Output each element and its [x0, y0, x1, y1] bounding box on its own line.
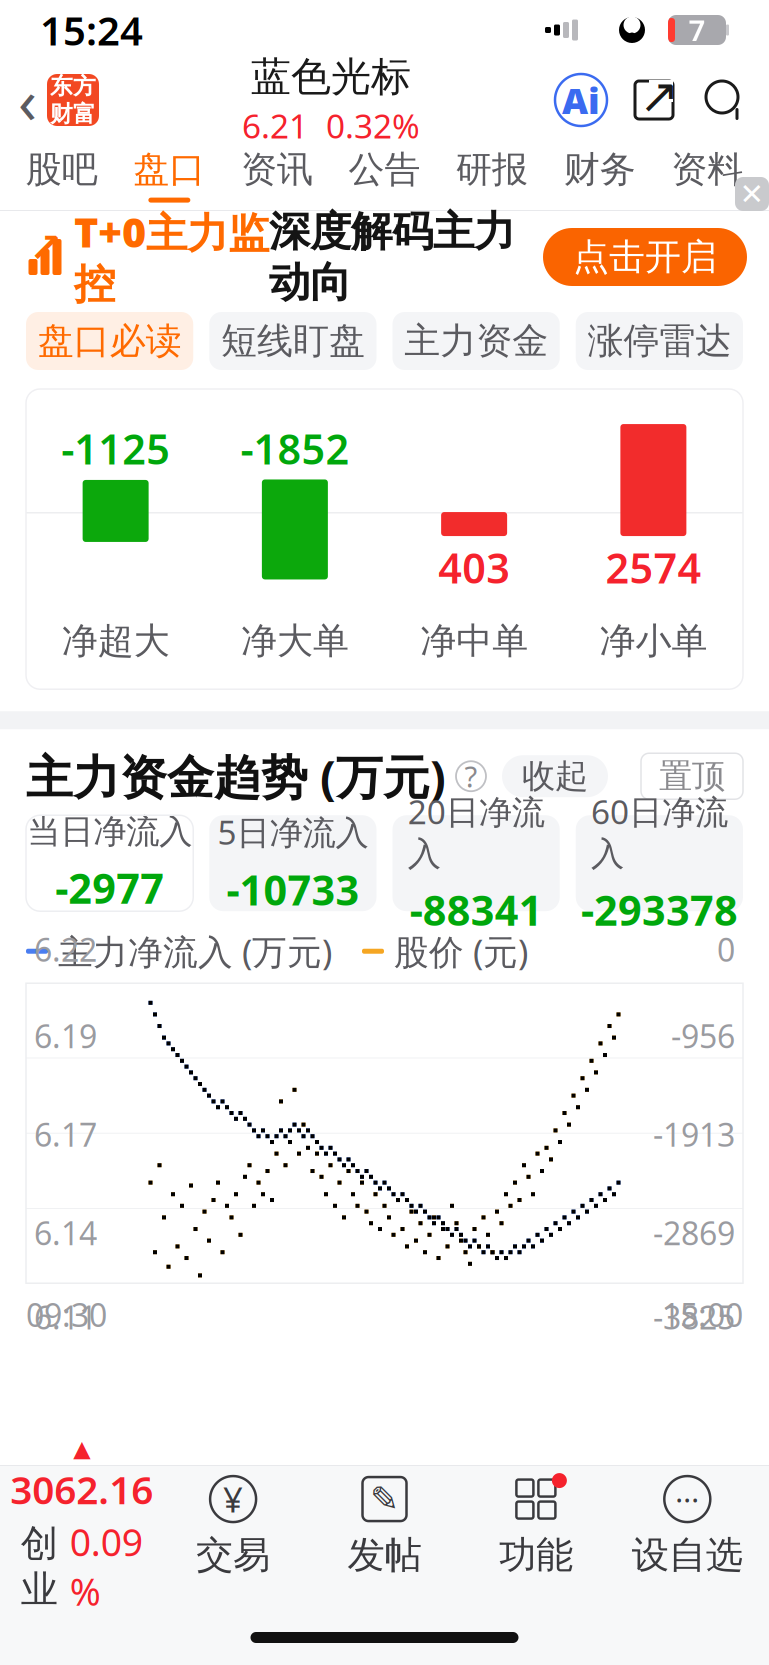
staticText: ✕ [739, 177, 764, 211]
staticText: 研报 [456, 147, 528, 192]
staticText: -3825 [653, 1296, 735, 1338]
staticText: 当日净流入 [27, 811, 192, 852]
staticText: -293378 [581, 882, 738, 937]
staticText: 6.17 [34, 1113, 97, 1155]
button[interactable]: 点击开启 [543, 228, 747, 286]
staticText: 6.21 0.32% [242, 103, 420, 148]
staticText: ↗ [29, 225, 63, 271]
button[interactable]: 股吧 [8, 140, 116, 210]
button[interactable]: 涨停雷达 [576, 312, 743, 370]
staticText: -2869 [653, 1211, 735, 1254]
button[interactable]: 主力资金 [392, 312, 560, 370]
staticText: 0.09% [70, 1517, 143, 1616]
staticText: 置顶 [659, 756, 725, 797]
staticText: 功能 [499, 1532, 573, 1578]
staticText: -2977 [55, 860, 164, 915]
button[interactable]: 资料 [653, 140, 761, 210]
staticText: 09:30 [26, 1293, 107, 1336]
staticText: 2574 [605, 540, 701, 595]
staticText: 净小单 [599, 619, 707, 663]
staticText: 15:00 [662, 1293, 743, 1336]
staticText: 创业 [21, 1521, 58, 1612]
staticText: 盘口 [133, 147, 205, 192]
staticText: 5日净流入 [217, 810, 368, 854]
button[interactable]: 说明 [456, 761, 486, 791]
staticText: T+0主力监控 [74, 204, 269, 310]
button[interactable]: AI 助手 [555, 74, 607, 126]
button[interactable]: 收起 [502, 755, 608, 797]
button[interactable]: 分享 [631, 77, 677, 123]
staticText: 涨停雷达 [587, 319, 731, 363]
staticText: 15:24 [40, 3, 143, 56]
button[interactable]: 研报 [438, 140, 546, 210]
staticText: Ai [562, 76, 600, 124]
staticText: 交易 [196, 1532, 270, 1578]
staticText: 财务 [564, 147, 636, 192]
button[interactable]: 60日净流入 [576, 815, 743, 911]
button[interactable]: 20日净流入 [392, 815, 560, 911]
staticText: 主力资金 [404, 319, 548, 363]
staticText: 蓝色光标 [251, 52, 411, 101]
staticText: 净中单 [420, 619, 528, 663]
staticText: 盘口必读 [38, 319, 182, 363]
staticText: 净大单 [241, 619, 349, 663]
staticText: 资料 [671, 147, 743, 192]
staticText: 深度解码主力动向 [269, 206, 515, 308]
staticText: -88341 [410, 882, 543, 937]
staticText: 3062.16 [10, 1464, 153, 1515]
staticText: 6.22 [34, 928, 97, 970]
staticText: -1852 [240, 421, 349, 476]
button[interactable]: 资讯 [223, 140, 331, 210]
staticText: 股价 (元) [394, 928, 528, 974]
staticText: ↗ [639, 69, 679, 123]
staticText: 6.11 [34, 1296, 97, 1338]
staticText: -10733 [226, 862, 359, 917]
staticText: 0 [717, 928, 735, 970]
staticText: 6.19 [34, 1014, 97, 1057]
staticText: 60日净流入 [591, 789, 728, 874]
staticText: 短线盯盘 [221, 319, 365, 363]
staticText: 7 [688, 10, 705, 49]
staticText: ✎ [370, 1479, 399, 1519]
button[interactable]: 返回 东方财富 [0, 65, 107, 135]
staticText: 资讯 [241, 147, 313, 192]
button[interactable]: ✎ [309, 1466, 460, 1586]
button[interactable]: 财务 [546, 140, 653, 210]
staticText: 主力资金趋势 (万元) [26, 745, 446, 807]
button[interactable]: 搜索 [701, 77, 747, 123]
staticText: 20日净流入 [408, 789, 545, 874]
staticText: -1913 [653, 1113, 735, 1155]
button[interactable]: 关闭 [735, 177, 769, 211]
staticText: 东方 财富 [50, 72, 96, 128]
button[interactable]: 置顶 [641, 753, 743, 799]
staticText: 公告 [348, 147, 420, 192]
staticText: -956 [671, 1014, 735, 1057]
staticText: ▲ [73, 1436, 90, 1462]
staticText: 点击开启 [573, 235, 717, 279]
button[interactable]: 5日净流入 [209, 815, 376, 911]
button[interactable]: 短线盯盘 [209, 312, 376, 370]
staticText: ‹ [18, 59, 37, 141]
staticText: ¥ [223, 1476, 243, 1522]
staticText: 403 [438, 540, 510, 595]
staticText: ··· [675, 1480, 699, 1519]
button[interactable]: 当日净流入 [26, 815, 193, 911]
button[interactable]: 盘口 [116, 140, 223, 210]
staticText: ? [464, 757, 477, 796]
staticText: 设自选 [632, 1532, 743, 1578]
button[interactable]: 功能 [460, 1466, 612, 1586]
button[interactable]: 盘口必读 [26, 312, 193, 370]
staticText: 净超大 [62, 619, 170, 663]
staticText: 股吧 [26, 147, 98, 192]
staticText: 收起 [522, 756, 588, 797]
staticText: 2574 [609, 387, 697, 439]
button[interactable]: ¥ [157, 1466, 309, 1586]
staticText: 发帖 [347, 1532, 421, 1578]
button[interactable]: 公告 [331, 140, 438, 210]
button[interactable]: ··· [612, 1466, 763, 1586]
button[interactable]: ▲ [6, 1466, 157, 1586]
staticText: 6.14 [34, 1211, 97, 1254]
staticText: 主力净流入 (万元) [58, 928, 332, 974]
staticText: -1125 [61, 421, 170, 476]
